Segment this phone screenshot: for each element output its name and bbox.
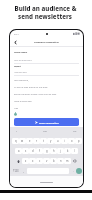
button[interactable]: n	[57, 158, 64, 164]
staticText: Build an audience &	[14, 4, 77, 12]
staticText: d	[32, 149, 34, 153]
staticText: w	[21, 139, 24, 143]
staticText: z	[25, 159, 27, 163]
staticText: x	[32, 159, 34, 163]
button[interactable]: g	[43, 148, 50, 154]
staticText: Neil	[14, 107, 19, 110]
button[interactable]: z	[22, 158, 29, 164]
staticText: h	[53, 149, 55, 153]
button[interactable]: Shift	[15, 158, 22, 164]
button[interactable]: p	[75, 138, 82, 144]
staticText: v	[46, 159, 48, 163]
staticText: I'll post a new article on the blog	[14, 86, 48, 89]
staticText: n	[60, 159, 62, 163]
staticText: r	[36, 139, 38, 143]
staticText: m	[66, 159, 69, 163]
staticText: Have a good day!	[14, 100, 32, 103]
button[interactable]: d	[29, 148, 36, 154]
staticText: I'm	[73, 130, 77, 133]
button[interactable]: r	[33, 138, 40, 144]
button[interactable]: u	[54, 138, 61, 144]
staticText: a	[18, 149, 20, 153]
staticText: ,	[23, 169, 24, 173]
button[interactable]: t	[40, 138, 47, 144]
staticText: q	[15, 139, 17, 143]
button[interactable]: s	[22, 148, 29, 154]
staticText: e	[29, 139, 31, 143]
staticText: u	[57, 139, 59, 143]
staticText: p	[78, 139, 80, 143]
staticText: s	[25, 149, 27, 153]
button[interactable]: a	[15, 148, 22, 154]
button[interactable]: q	[12, 138, 19, 144]
button[interactable]: f	[36, 148, 43, 154]
button[interactable]: j	[57, 148, 64, 154]
staticText: send newsletters	[18, 12, 72, 20]
staticText: j	[60, 149, 61, 153]
staticText: l	[74, 149, 75, 153]
staticText: I	[16, 130, 17, 133]
staticText: Subject	[14, 65, 21, 68]
staticText: b	[53, 159, 55, 163]
button[interactable]: h	[50, 148, 57, 154]
button[interactable]: x	[29, 158, 36, 164]
staticText: .	[73, 169, 74, 173]
button[interactable]: l	[71, 148, 78, 154]
staticText: i	[64, 139, 65, 143]
staticText: 9:41	[14, 32, 19, 35]
button[interactable]: Back	[12, 39, 18, 45]
staticText: k	[67, 149, 69, 153]
button[interactable]: ?123	[11, 168, 20, 174]
staticText: The	[43, 130, 47, 133]
staticText: ?123	[13, 169, 19, 173]
staticText: New blog post	[14, 71, 27, 74]
button[interactable]: o	[68, 138, 75, 144]
button[interactable]: e	[26, 138, 33, 144]
button[interactable]: b	[50, 158, 57, 164]
button[interactable]: v	[43, 158, 50, 164]
staticText: t	[43, 139, 44, 143]
staticText: f	[39, 149, 40, 153]
staticText: y	[50, 139, 52, 143]
staticText: about the latest trends. Here you go now…	[14, 93, 57, 96]
button[interactable]: Enter	[76, 168, 82, 174]
staticText: o	[71, 139, 73, 143]
staticText: Hey everyone,	[14, 79, 29, 82]
staticText: Insider Memo	[14, 51, 28, 54]
button[interactable]: y	[47, 138, 54, 144]
button[interactable]: Backspace	[71, 158, 78, 164]
staticText: Send Newsletter	[39, 121, 59, 124]
button[interactable]: i	[61, 138, 68, 144]
button[interactable]: w	[19, 138, 26, 144]
button[interactable]: m	[64, 158, 71, 164]
staticText: g	[46, 149, 48, 153]
staticText: Compose Newsletter	[34, 40, 59, 43]
staticText: c	[39, 159, 41, 163]
staticText: They did great work	[14, 59, 32, 62]
button[interactable]: k	[64, 148, 71, 154]
button[interactable]: c	[36, 158, 43, 164]
button[interactable]: Send Newsletter	[14, 118, 79, 126]
button[interactable]: ,	[20, 168, 26, 174]
